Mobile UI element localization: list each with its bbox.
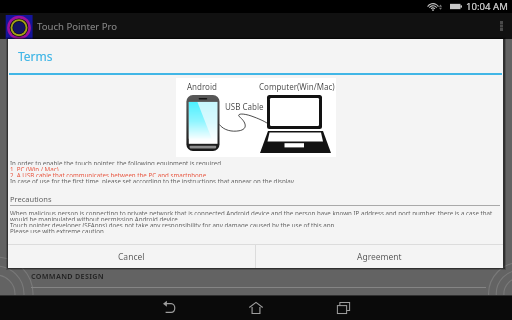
staticText: Touch pointer developer (SFApps) does no… [10, 221, 336, 227]
staticText: Touch Pointer Pro [37, 20, 118, 33]
button[interactable]: Cancel [8, 245, 255, 268]
button[interactable]: More options [490, 13, 512, 39]
staticText: When malicious person is connecting to p… [10, 209, 493, 215]
staticText: USB Cable [225, 101, 264, 112]
staticText: Android [187, 81, 217, 92]
staticText: 10:04 AM [466, 0, 508, 13]
button[interactable]: Back [132, 295, 206, 320]
staticText: Computer(Win/Mac) [259, 81, 335, 92]
staticText: Please use with extreme caution. [10, 227, 106, 233]
staticText: In order to enable the touch pointer, th… [10, 159, 223, 165]
button[interactable]: Agreement [256, 245, 503, 268]
staticText: Cancel [118, 251, 145, 263]
staticText: Precautions [10, 194, 52, 204]
staticText: would be manipulated without permission … [10, 215, 180, 221]
button[interactable]: Recent apps [306, 295, 380, 320]
staticText: Agreement [357, 251, 402, 263]
staticText: Terms [18, 48, 53, 64]
staticText: COMMAND DESIGN [31, 271, 104, 281]
staticText: 2. A USB cable that communicates between… [10, 171, 207, 177]
staticText: In case of use for the first time, pleas… [10, 177, 296, 183]
button[interactable]: Home [219, 295, 293, 320]
staticText: 1. PC (Win / Mac) [10, 165, 59, 171]
